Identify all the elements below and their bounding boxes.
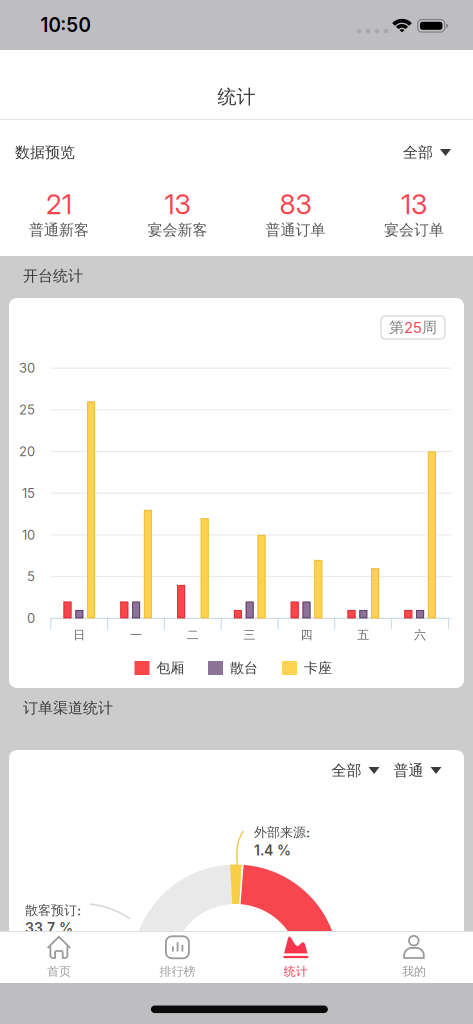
staticText: 数据预览	[15, 143, 75, 162]
button[interactable]: 普通	[393, 761, 441, 780]
staticText: 15	[22, 485, 35, 501]
staticText: 首页	[47, 964, 71, 979]
staticText: 全部	[331, 761, 361, 780]
staticText: 二	[187, 628, 199, 642]
staticText: 一	[130, 628, 142, 642]
staticText: 统计	[284, 964, 308, 979]
button[interactable]: 全部	[331, 761, 379, 780]
staticText: 10:50	[40, 14, 90, 36]
staticText: 卡座	[304, 659, 332, 677]
staticText: 排行榜	[159, 964, 195, 979]
staticText: 25	[19, 402, 35, 417]
staticText: 订单渠道统计	[23, 699, 113, 717]
staticText: 散台	[230, 659, 258, 677]
staticText: 包厢	[156, 659, 184, 677]
staticText: 普通	[393, 761, 423, 780]
staticText: 13	[164, 189, 190, 220]
staticText: 第	[389, 318, 404, 337]
staticText: 开台统计	[23, 267, 83, 285]
button[interactable]: 我的	[355, 931, 473, 983]
button[interactable]: 排行榜	[118, 931, 236, 983]
staticText: 普通新客	[29, 221, 89, 239]
button[interactable]: 全部	[403, 143, 451, 162]
staticText: 全部	[403, 143, 433, 162]
staticText: 三	[244, 628, 256, 642]
staticText: 我的	[402, 964, 426, 979]
staticText: 六	[414, 628, 426, 642]
staticText: 20	[19, 444, 35, 459]
staticText: 周	[422, 318, 437, 337]
staticText: 83	[280, 189, 312, 220]
staticText: 10	[22, 527, 35, 542]
staticText: 5	[27, 569, 35, 584]
staticText: 25	[404, 319, 422, 336]
staticText: 日	[73, 628, 85, 642]
button[interactable]: 首页	[0, 931, 118, 983]
staticText: 散客预订:	[25, 902, 81, 918]
staticText: 四	[300, 628, 312, 642]
staticText: 1.4 %	[254, 842, 291, 859]
staticText: 33.7 %	[25, 920, 73, 936]
staticText: 外部来源:	[254, 824, 310, 840]
staticText: 五	[357, 628, 369, 642]
staticText: 宴会订单	[384, 221, 444, 239]
staticText: 13	[401, 189, 427, 220]
staticText: 21	[46, 189, 72, 220]
staticText: 0	[27, 611, 35, 626]
staticText: 宴会新客	[147, 221, 207, 239]
button[interactable]: 统计	[237, 931, 355, 983]
staticText: 30	[19, 360, 35, 376]
staticText: 普通订单	[266, 221, 326, 239]
staticText: 统计	[217, 85, 255, 109]
